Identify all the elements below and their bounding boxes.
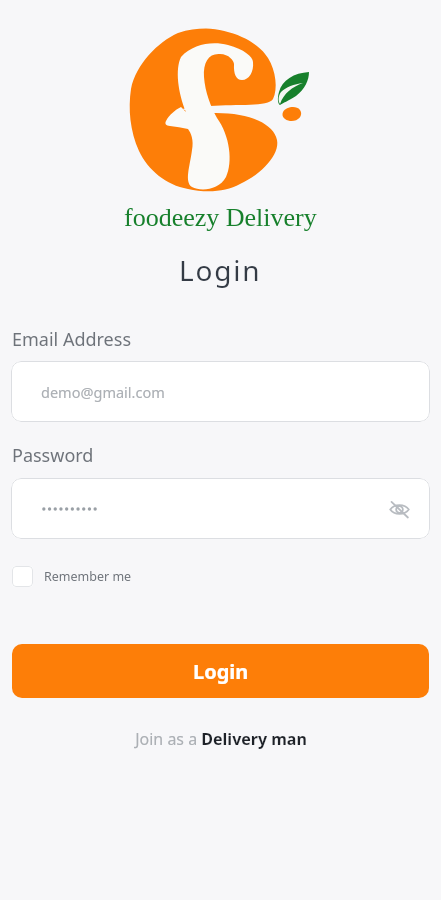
- staticText: foodeezy Delivery: [124, 203, 317, 232]
- button[interactable]: demo@gmail.com: [11, 361, 430, 422]
- button[interactable]: Show password: [384, 494, 414, 524]
- staticText: Login: [193, 658, 249, 685]
- staticText: Login: [179, 251, 262, 289]
- staticText: Password: [12, 443, 94, 468]
- button[interactable]: Login: [12, 644, 429, 698]
- staticText: Remember me: [44, 568, 132, 585]
- button[interactable]: Show password: [11, 478, 430, 539]
- button[interactable]: Join as a Delivery man: [135, 728, 307, 750]
- button[interactable]: Remember me: [12, 566, 132, 587]
- staticText: demo@gmail.com: [41, 382, 165, 402]
- staticText: Email Address: [12, 327, 132, 352]
